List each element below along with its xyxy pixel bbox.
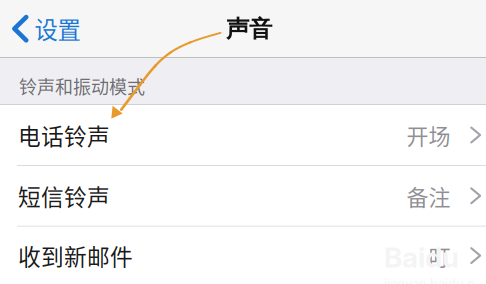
staticText: Baidu	[384, 240, 459, 274]
staticText: 铃声和振动模式	[19, 73, 145, 99]
button[interactable]: 设置	[0, 0, 91, 58]
staticText: 开场	[407, 119, 451, 151]
staticText: 电话铃声	[18, 119, 110, 151]
staticText: 收到新邮件	[18, 239, 133, 272]
button[interactable]: 电话铃声	[0, 105, 486, 165]
staticText: jingyan.baidu.com	[384, 276, 479, 284]
button[interactable]: 收到新邮件	[0, 227, 486, 284]
staticText: 设置	[35, 12, 81, 46]
staticText: 声音	[226, 14, 272, 44]
staticText: 叮	[429, 240, 451, 272]
staticText: 备注	[407, 180, 451, 212]
button[interactable]: 短信铃声	[0, 166, 486, 226]
staticText: 短信铃声	[18, 179, 110, 212]
